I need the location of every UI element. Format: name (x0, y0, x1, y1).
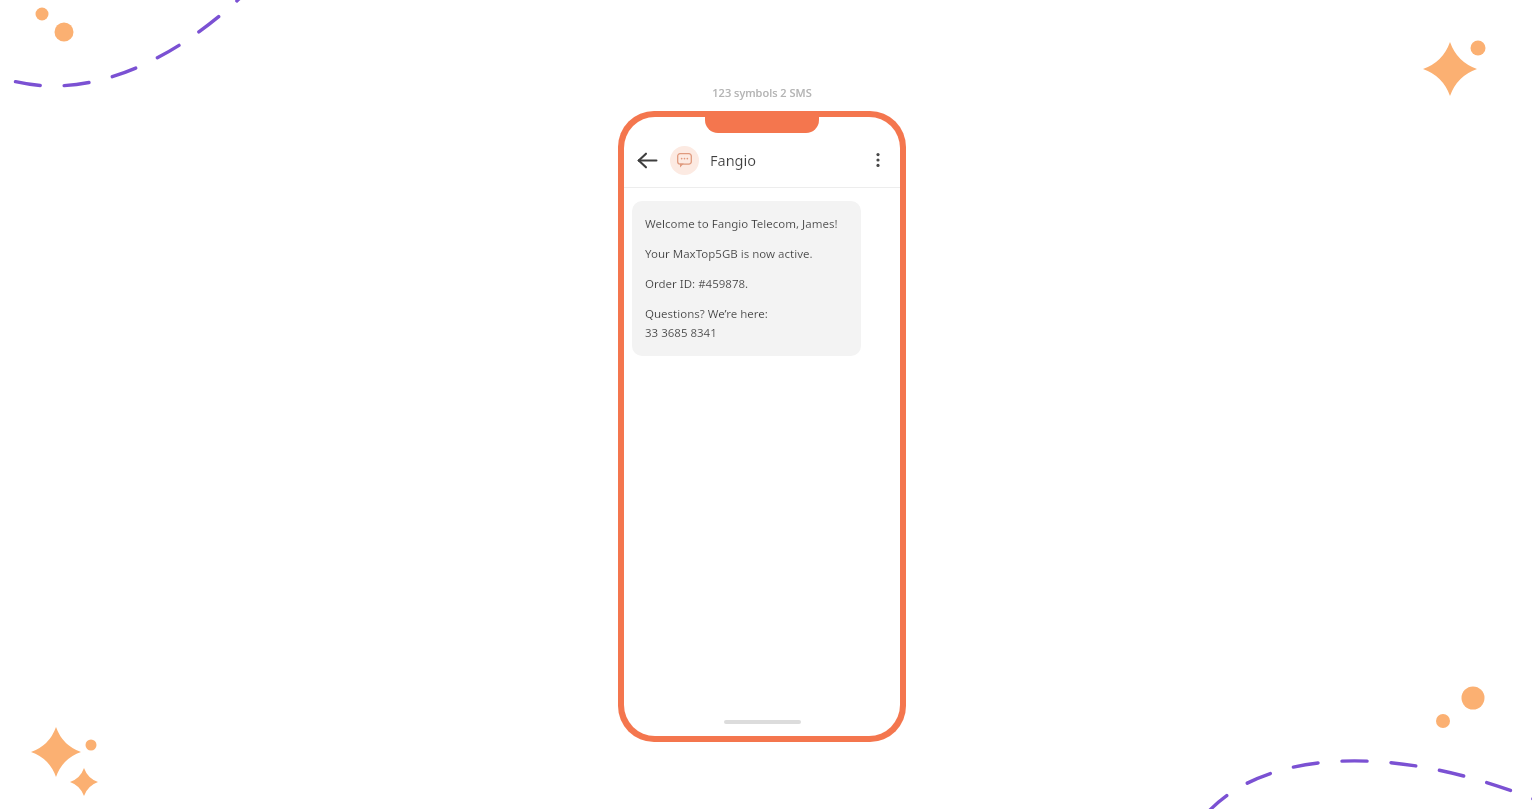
staticText: Questions? We’re here: (645, 306, 768, 322)
staticText: 33 3685 8341 (645, 325, 717, 341)
staticText: Your MaxTop5GB is now active. (645, 246, 813, 262)
staticText: 123 symbols 2 SMS (712, 85, 812, 100)
button[interactable]: Welcome to Fangio Telecom, James! (632, 201, 861, 356)
staticText: Fangio (710, 150, 757, 170)
staticText: Welcome to Fangio Telecom, James! (645, 216, 838, 232)
button[interactable]: Back (630, 143, 664, 177)
staticText: Order ID: #459878. (645, 276, 749, 292)
button[interactable]: More options (861, 143, 895, 177)
button[interactable]: Contact avatar (670, 146, 699, 175)
